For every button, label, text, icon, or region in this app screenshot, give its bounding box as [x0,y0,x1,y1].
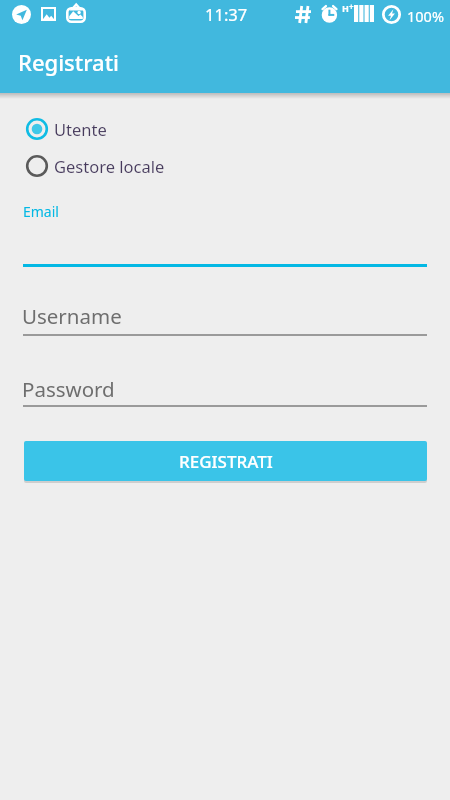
staticText: H [342,2,349,14]
button[interactable]: Email [23,198,427,267]
other: Battery [382,5,401,24]
staticText: Utente [54,118,107,140]
staticText: 100% [407,6,444,26]
button[interactable]: Password [21,374,425,406]
staticText: Username [22,302,122,330]
other: Screenshot [66,4,86,22]
staticText: 11:37 [205,3,248,25]
staticText: REGISTRATI [179,450,273,473]
button[interactable]: REGISTRATI [24,441,427,481]
staticText: Gestore locale [54,155,165,177]
other: Signal [354,5,374,22]
other: Hashtag [295,6,311,23]
staticText: Registrati [18,47,120,77]
other: Telegram notification [12,5,31,24]
button[interactable]: Gestore locale [22,150,165,182]
button[interactable]: Username [21,301,425,333]
other: Alarm [321,4,338,23]
button[interactable]: Utente [22,113,107,145]
other: Image [41,7,56,21]
staticText: Email [23,202,59,221]
staticText: + [349,1,354,12]
staticText: Password [22,375,115,403]
